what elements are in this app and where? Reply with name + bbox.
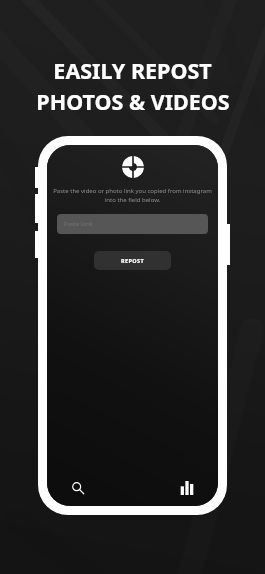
staticText: REPOST <box>121 257 145 264</box>
staticText: PHOTOS & VIDEOS <box>36 87 230 116</box>
button[interactable]: REPOST <box>94 251 171 270</box>
button[interactable]: Statistics <box>176 477 198 499</box>
staticText: EASILY REPOST <box>53 56 212 85</box>
staticText: Paste the video or photo link you copied… <box>53 187 212 204</box>
staticText: Paste Link <box>64 220 93 228</box>
button[interactable]: Search <box>67 477 89 499</box>
button[interactable]: Paste Link <box>57 214 208 234</box>
